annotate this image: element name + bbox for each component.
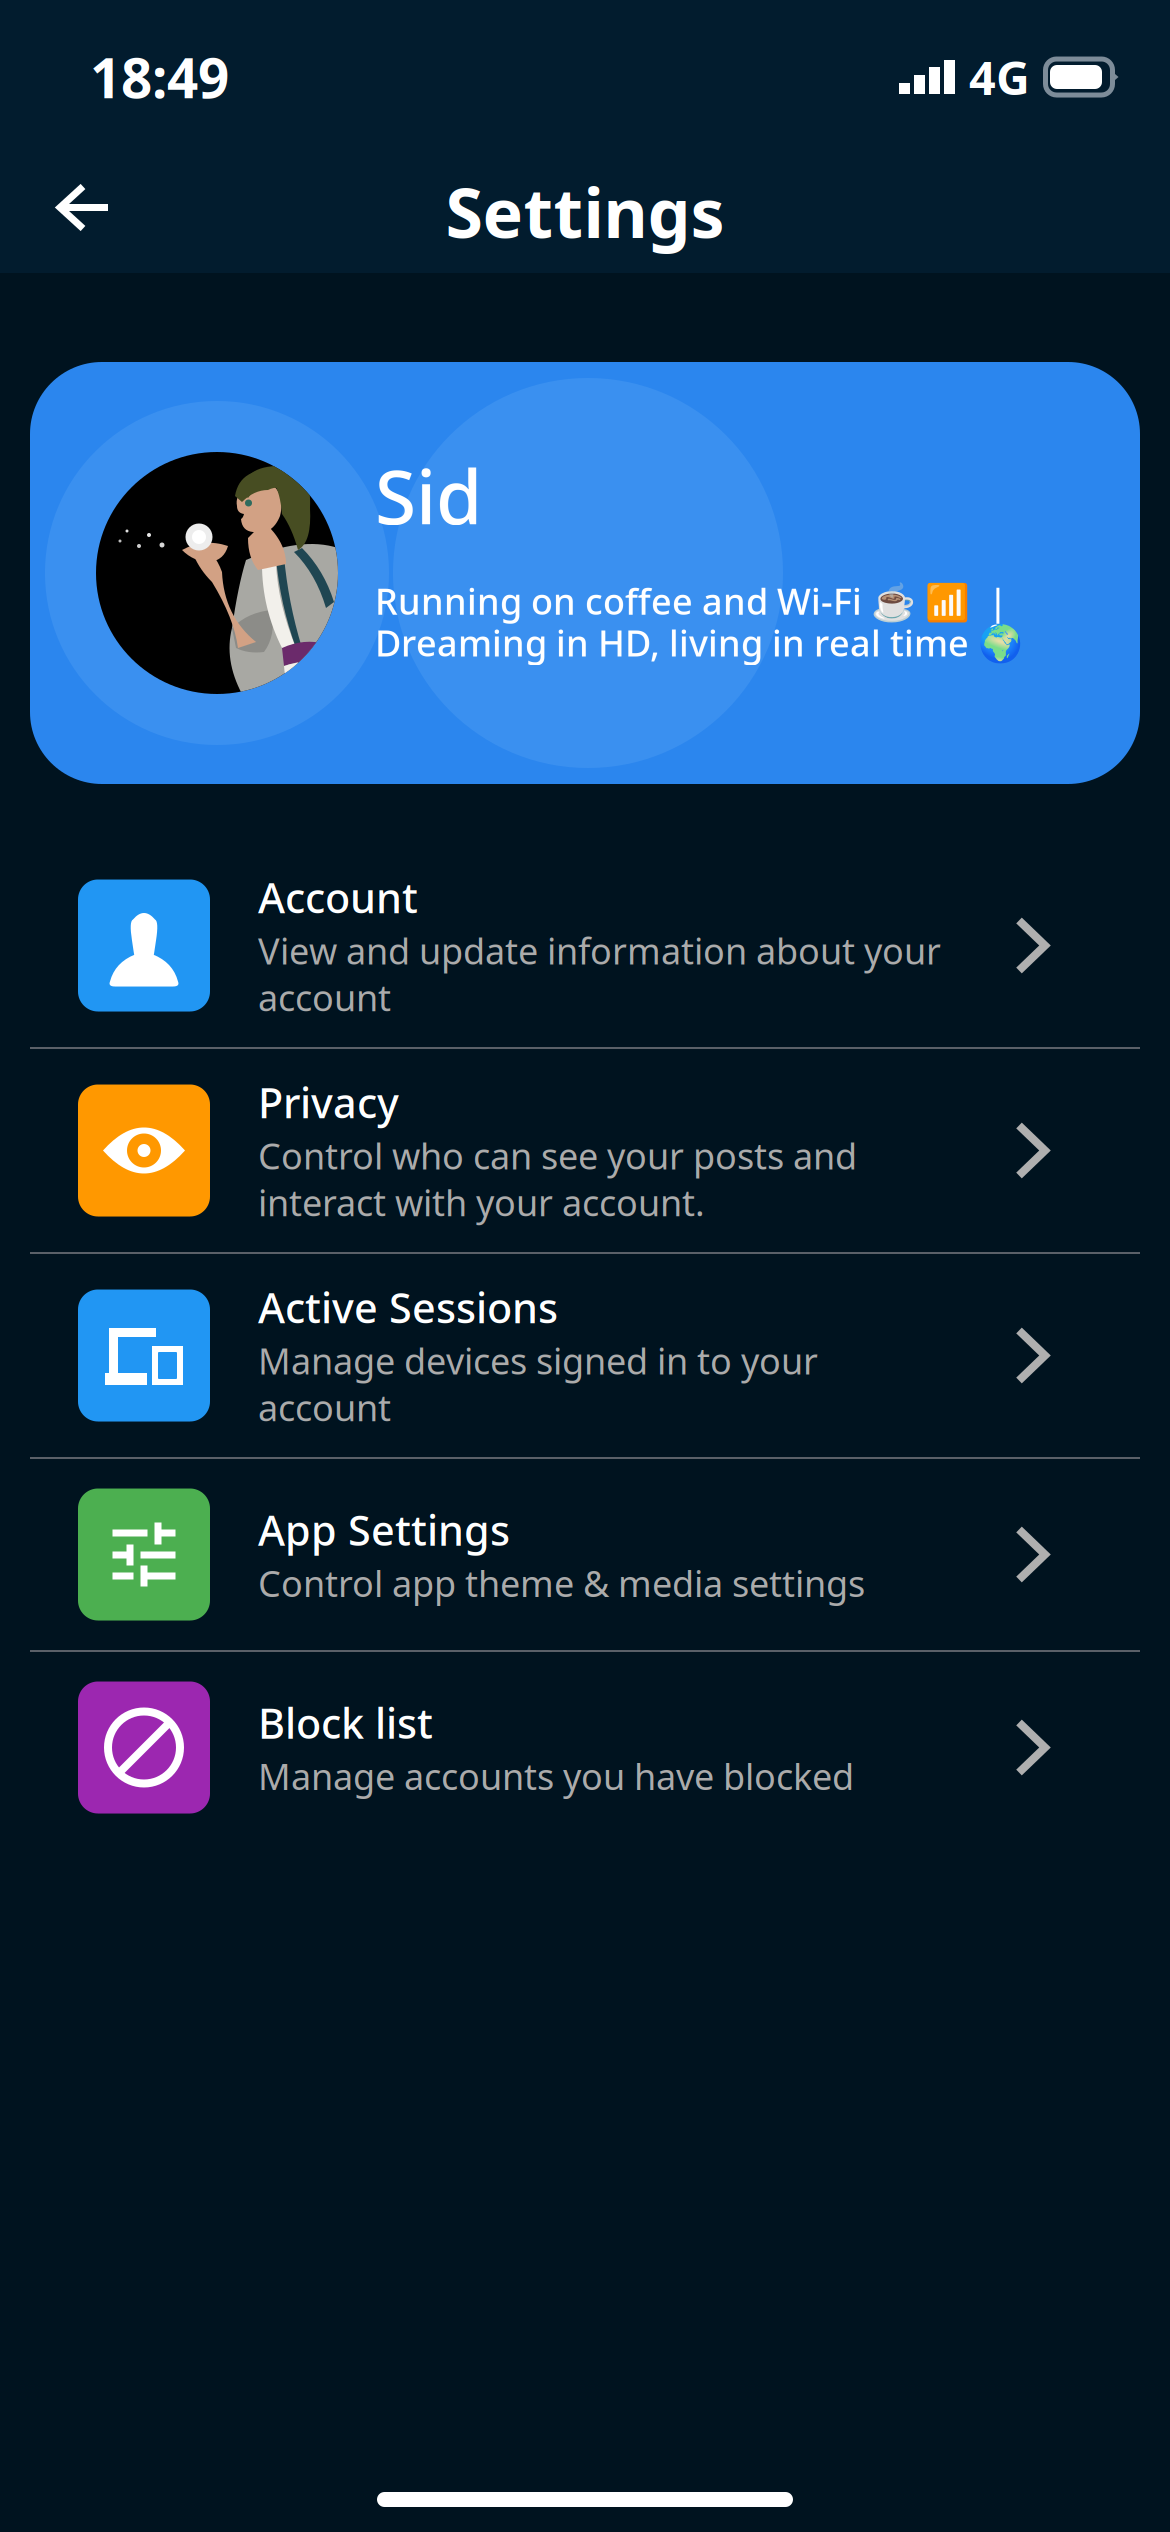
button[interactable]: Account — [0, 844, 1170, 1047]
staticText: Settings — [445, 166, 724, 257]
staticText: 18:49 — [90, 41, 229, 113]
staticText: Account — [258, 870, 418, 925]
staticText: interact with your account. — [258, 1178, 705, 1226]
staticText: Manage accounts you have blocked — [258, 1752, 854, 1800]
button[interactable]: Block list — [0, 1652, 1170, 1843]
button[interactable]: App Settings — [0, 1459, 1170, 1650]
button[interactable]: Active Sessions — [0, 1254, 1170, 1457]
staticText: Dreaming in HD, living in real time 🌍 — [375, 619, 1023, 666]
staticText: Manage devices signed in to your — [258, 1337, 818, 1384]
staticText: Running on coffee and Wi-Fi ☕ 📶 | — [375, 577, 1008, 625]
staticText: App Settings — [258, 1502, 510, 1557]
staticText: account — [258, 973, 391, 1021]
staticText: Sid — [375, 446, 482, 545]
staticText: Control app theme & media settings — [258, 1559, 865, 1607]
staticText: View and update information about your — [258, 927, 941, 974]
staticText: 4G — [969, 46, 1030, 108]
staticText: Control who can see your posts and — [258, 1132, 857, 1179]
staticText: Block list — [258, 1695, 433, 1750]
button[interactable]: Privacy — [0, 1049, 1170, 1252]
staticText: Privacy — [258, 1075, 399, 1130]
button[interactable]: Back — [36, 161, 132, 253]
staticText: Active Sessions — [258, 1280, 558, 1335]
button[interactable]: Sid — [30, 362, 1140, 784]
staticText: account — [258, 1383, 391, 1431]
